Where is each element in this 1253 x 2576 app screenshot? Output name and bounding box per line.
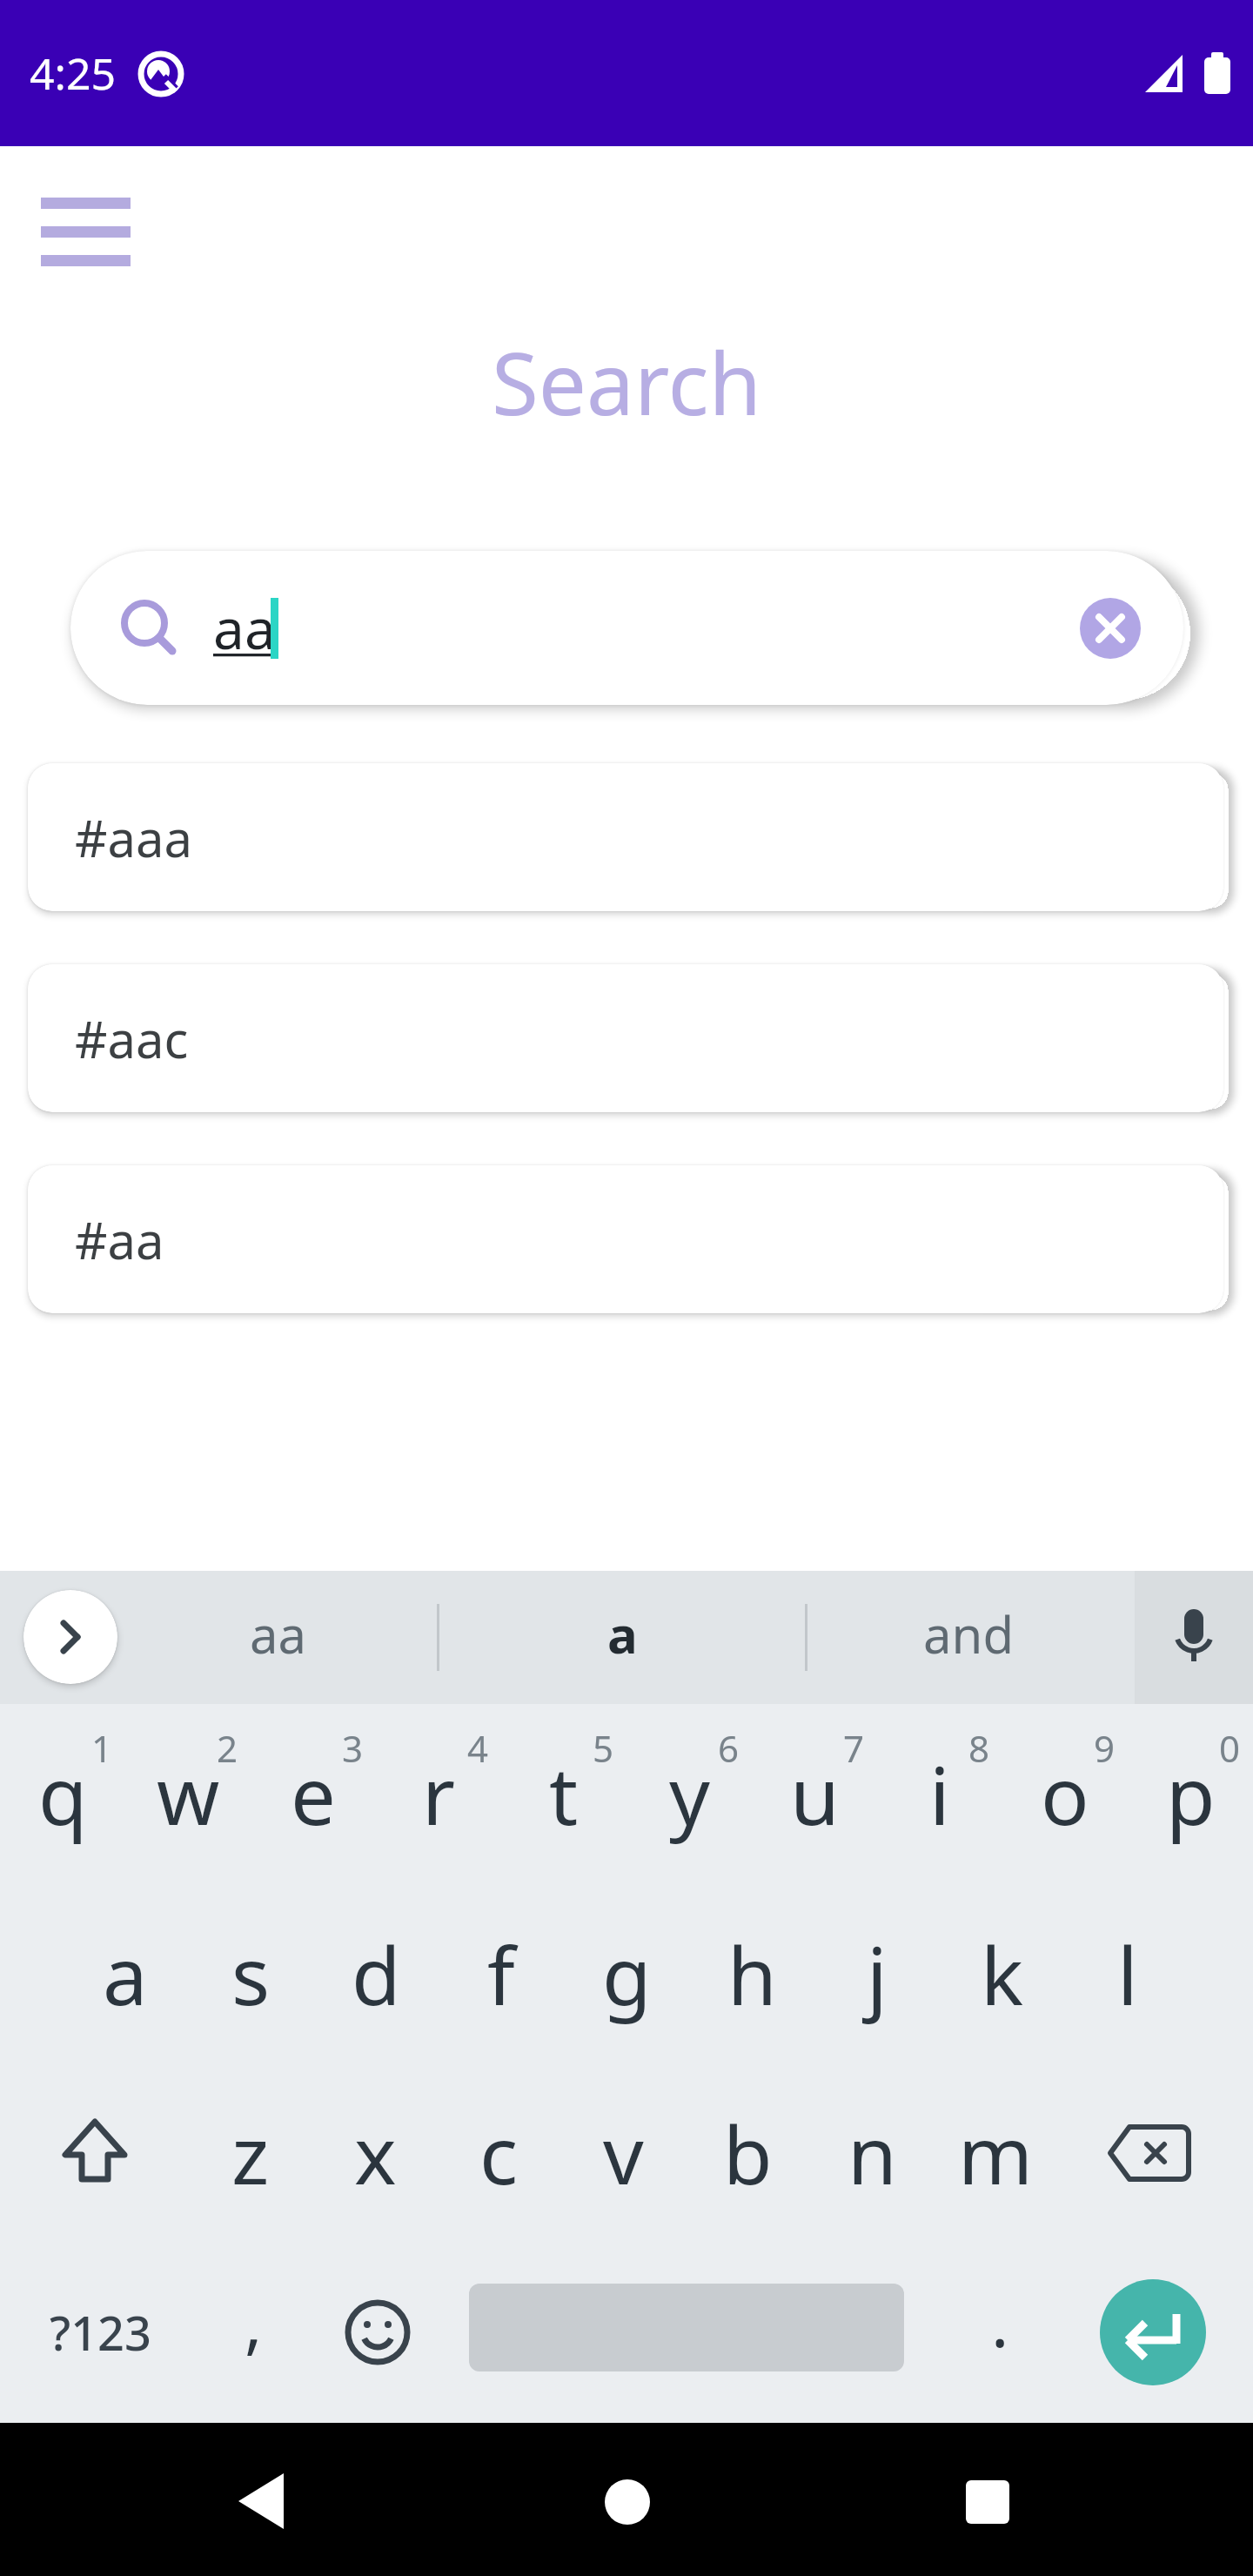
staticText: 0 [1219,1723,1241,1773]
staticText: x [354,2099,397,2208]
staticText: ?123 [50,2300,151,2365]
staticText: Search [492,324,762,439]
button[interactable]: c [436,2063,561,2243]
button[interactable] [21,2063,169,2243]
button[interactable]: v [560,2063,686,2243]
staticText: b [723,2099,773,2208]
button[interactable]: s [188,1884,313,2063]
button[interactable] [235,2472,287,2532]
button[interactable] [23,171,148,278]
staticText: n [848,2099,897,2208]
button[interactable]: p [1128,1704,1253,1883]
button[interactable]: u [752,1704,877,1883]
staticText: o [1041,1740,1089,1848]
button[interactable]: m [933,2063,1058,2243]
button[interactable]: n [809,2063,935,2243]
staticText: y [669,1740,710,1848]
staticText: r [422,1740,455,1848]
button[interactable]: ?123 [17,2243,183,2422]
staticText: k [981,1920,1024,2029]
button[interactable] [1076,2063,1224,2243]
staticText: q [38,1740,88,1848]
staticText: 4 [467,1723,489,1773]
staticText: s [231,1920,271,2029]
staticText: d [352,1920,401,2029]
button[interactable]: x [312,2063,438,2243]
button[interactable]: . [948,2232,1052,2412]
staticText: i [929,1740,950,1848]
staticText: 2 [217,1723,238,1773]
button[interactable]: z [188,2063,313,2243]
button[interactable] [1080,598,1141,659]
button[interactable]: j [814,1884,940,2063]
staticText: 6 [718,1723,740,1773]
staticText: z [231,2099,270,2208]
staticText: t [549,1740,579,1848]
button[interactable]: q [0,1704,125,1883]
staticText: j [867,1920,888,2029]
button[interactable]: b [685,2063,810,2243]
staticText: 3 [342,1723,364,1773]
staticText: p [1166,1740,1216,1848]
button[interactable]: l [1065,1884,1190,2063]
staticText: 1 [91,1723,113,1773]
button[interactable]: d [313,1884,439,2063]
staticText: 5 [593,1723,614,1773]
button[interactable]: w [125,1704,251,1883]
staticText: g [602,1920,652,2029]
staticText: aa [213,590,276,666]
staticText: #aaa [75,803,193,872]
button[interactable]: i [877,1704,1002,1883]
staticText: l [1117,1920,1138,2029]
button[interactable]: o [1002,1704,1128,1883]
button[interactable]: g [564,1884,689,2063]
staticText: . [991,2277,1009,2367]
staticText: f [487,1920,515,2029]
button[interactable]: a [63,1884,188,2063]
staticText: a [607,1600,638,1668]
staticText: #aac [75,1004,189,1073]
staticText: m [958,2099,1034,2208]
button[interactable]: a [492,1567,753,1701]
button[interactable] [966,2480,1009,2524]
button[interactable] [317,2243,439,2422]
staticText: h [727,1920,777,2029]
button[interactable]: e [251,1704,376,1883]
staticText: w [157,1740,220,1848]
staticText: e [291,1740,336,1848]
button[interactable]: and [838,1567,1099,1701]
staticText: 7 [843,1723,865,1773]
staticText: c [479,2099,519,2208]
staticText: 9 [1094,1723,1116,1773]
button[interactable] [1135,1571,1253,1704]
button[interactable]: , [201,2232,305,2412]
staticText: aa [250,1600,307,1668]
button[interactable]: r [376,1704,501,1883]
staticText: v [603,2099,644,2208]
button[interactable] [1100,2279,1206,2385]
button[interactable]: t [501,1704,626,1883]
button[interactable]: h [689,1884,814,2063]
button[interactable] [605,2479,650,2525]
staticText: #aa [75,1205,164,1274]
button[interactable]: #aac [28,964,1223,1112]
staticText: u [790,1740,840,1848]
button[interactable]: f [439,1884,564,2063]
button[interactable]: #aaa [28,763,1223,911]
staticText: a [103,1920,148,2029]
button[interactable]: y [626,1704,752,1883]
staticText: and [923,1600,1015,1668]
button[interactable] [23,1590,117,1684]
staticText: 8 [968,1723,990,1773]
staticText: 4:25 [30,44,117,103]
button[interactable]: k [940,1884,1065,2063]
button[interactable]: aa [70,551,1183,705]
button[interactable]: #aa [28,1165,1223,1313]
button[interactable]: aa [148,1567,409,1701]
staticText: , [245,2277,263,2367]
